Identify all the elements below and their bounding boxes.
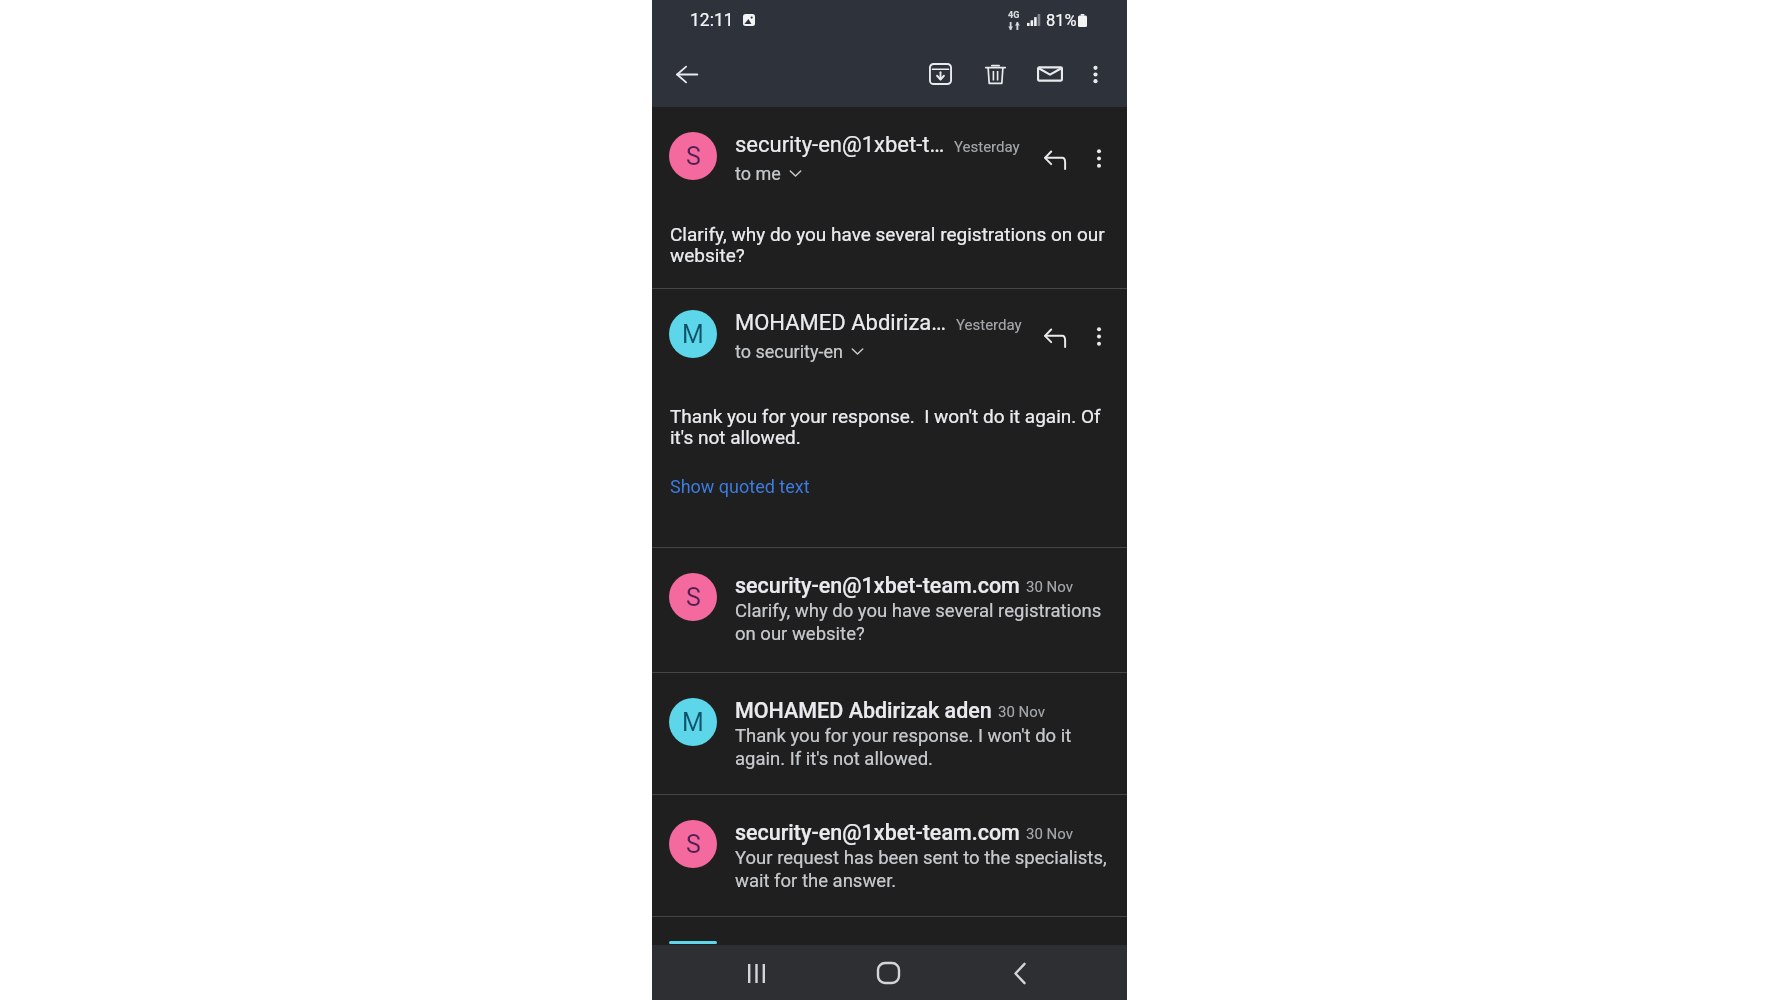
staticText: M: [682, 708, 704, 737]
button[interactable]: Reply: [1037, 318, 1075, 356]
button[interactable]: Archive: [917, 51, 963, 97]
button[interactable]: S: [652, 548, 1127, 672]
staticText: 81%: [1046, 11, 1077, 30]
button[interactable]: Back: [994, 947, 1046, 999]
staticText: M: [682, 320, 704, 349]
staticText: S: [686, 583, 701, 612]
button[interactable]: Back: [664, 51, 710, 97]
staticText: 30 Nov: [1026, 825, 1073, 843]
button[interactable]: More options: [1081, 140, 1117, 176]
staticText: Yesterday: [954, 138, 1020, 156]
staticText: security-en@1xbet-team.com: [735, 820, 1020, 845]
button[interactable]: Reply: [1037, 140, 1075, 178]
staticText: Thank you for your response. I won't do …: [735, 725, 1072, 770]
button[interactable]: Mark as unread: [1027, 51, 1073, 97]
button[interactable]: S: [652, 107, 1127, 288]
staticText: 4G: [1008, 10, 1020, 21]
staticText: Your request has been sent to the specia…: [735, 847, 1107, 892]
button[interactable]: Home: [862, 947, 914, 999]
staticText: MOHAMED Abdirizak aden: [735, 698, 992, 723]
button[interactable]: More options: [1074, 53, 1116, 95]
staticText: S: [686, 142, 701, 171]
staticText: Thank you for your response. I won't do …: [670, 405, 1101, 449]
staticText: Clarify, why do you have several registr…: [670, 223, 1105, 267]
staticText: to security-en: [735, 341, 843, 362]
staticText: to me: [735, 163, 781, 184]
staticText: 30 Nov: [998, 703, 1045, 721]
staticText: MOHAMED Abdiriza…: [735, 310, 947, 336]
button[interactable]: M: [652, 289, 1127, 547]
button[interactable]: S: [652, 795, 1127, 916]
staticText: S: [686, 830, 701, 859]
button[interactable]: Show quoted text: [670, 476, 810, 497]
staticText: 30 Nov: [1026, 578, 1073, 596]
staticText: security-en@1xbet-t…: [735, 132, 945, 158]
staticText: Yesterday: [956, 316, 1022, 334]
staticText: 12:11: [690, 10, 734, 31]
staticText: security-en@1xbet-team.com: [735, 573, 1020, 598]
button[interactable]: M: [652, 673, 1127, 794]
button[interactable]: Recents: [730, 947, 782, 999]
button[interactable]: More options: [1081, 318, 1117, 354]
button[interactable]: Delete: [972, 51, 1018, 97]
button[interactable]: M: [652, 917, 1127, 944]
staticText: Clarify, why do you have several registr…: [735, 600, 1102, 645]
